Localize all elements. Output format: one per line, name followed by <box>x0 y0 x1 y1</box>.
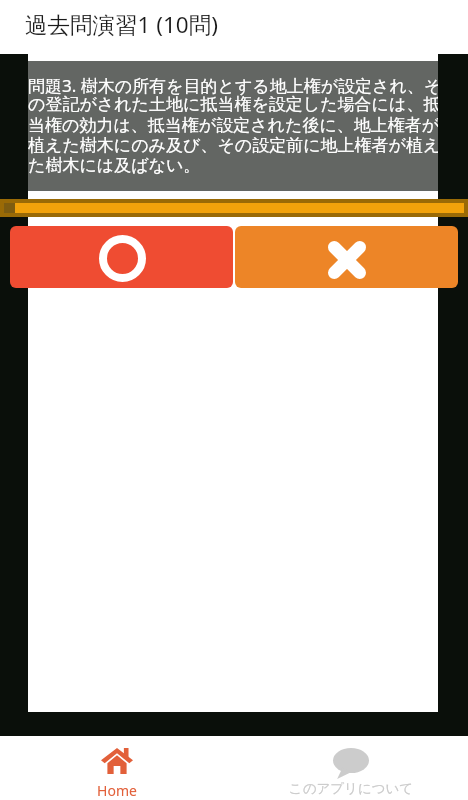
staticText: た樹木には及ばない。 <box>28 155 438 176</box>
staticText: 過去問演習1 (10問) <box>25 9 218 40</box>
staticText: 当権の効力は、抵当権が設定された後に、地上権者が <box>28 115 438 136</box>
staticText: Home <box>0 781 234 800</box>
staticText: このアプリについて <box>234 780 468 797</box>
staticText: 問題3. 樹木の所有を目的とする地上権が設定され、そ <box>28 74 438 97</box>
staticText: の登記がされた土地に抵当権を設定した場合には、抵 <box>28 94 438 115</box>
button[interactable]: 正しい <box>10 226 233 288</box>
button[interactable]: Home <box>0 736 234 800</box>
staticText: 植えた樹木にのみ及び、その設定前に地上権者が植え <box>28 135 438 156</box>
button[interactable]: このアプリについて <box>234 736 468 800</box>
button[interactable]: 誤り <box>235 226 458 288</box>
